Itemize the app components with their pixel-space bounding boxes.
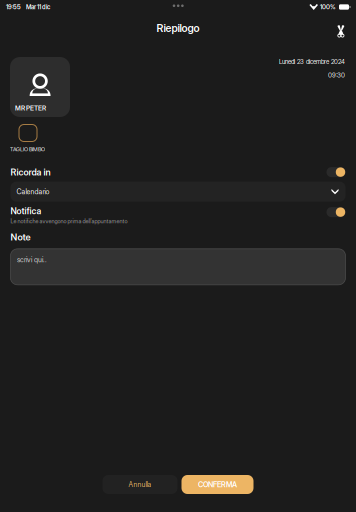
staticText: Ricorda in (10, 167, 50, 178)
staticText: MR PETER (15, 104, 46, 112)
button[interactable]: scrivi qui.. (10, 249, 345, 285)
staticText: CONFERMA (198, 480, 237, 489)
staticText: scrivi qui.. (17, 255, 47, 264)
staticText: Calendario (16, 187, 49, 196)
staticText: Mar 11 dic (26, 3, 50, 11)
button[interactable]: Annulla (102, 475, 177, 494)
staticText: 19:55 (6, 3, 21, 11)
staticText: Riepilogo (156, 21, 199, 34)
staticText: Notifica (10, 206, 41, 216)
button[interactable]: Calendario (10, 182, 345, 202)
staticText: 100% (320, 3, 336, 11)
button[interactable]: CONFERMA (181, 475, 253, 494)
button[interactable]: TAGLIO BIMBO (10, 117, 45, 153)
staticText: TAGLIO BIMBO (10, 146, 45, 153)
button[interactable]: MR PETER (10, 57, 70, 117)
staticText: Le notifiche avvengono prima dell'appunt… (10, 218, 127, 225)
staticText: Annulla (128, 480, 151, 489)
staticText: 09:30 (328, 71, 345, 79)
button[interactable]: Notifica (326, 206, 345, 217)
button[interactable]: Ricorda in (326, 167, 345, 177)
staticText: Note (10, 231, 30, 243)
staticText: Lunedì 23 dicembre 2024 (279, 58, 345, 65)
button[interactable]: Servizio (331, 17, 350, 38)
